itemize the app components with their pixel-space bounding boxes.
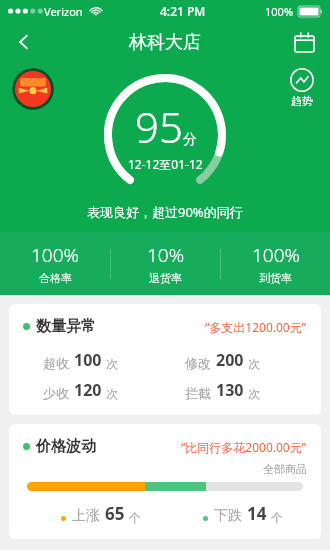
button[interactable]: 价格波动 (9, 424, 321, 539)
staticText: 拦截 (185, 385, 211, 401)
staticText: 200 (216, 349, 244, 371)
staticText: 4:21 PM (160, 3, 206, 19)
button[interactable]: 100% (0, 238, 110, 289)
button[interactable]: Back (4, 22, 44, 62)
staticText: 修改 (185, 355, 211, 371)
staticText: 分 (183, 131, 197, 149)
staticText: 14 (247, 502, 267, 525)
button[interactable]: 100% (221, 238, 330, 289)
staticText: 少收 (43, 385, 69, 401)
staticText: 到货率 (259, 271, 292, 285)
staticText: 表现良好，超过90%的同行 (87, 203, 243, 221)
staticText: 超收 (43, 355, 69, 371)
staticText: “多支出1200.00元” (205, 319, 307, 335)
staticText: 数量异常 (36, 317, 96, 336)
staticText: “比同行多花2000.00元” (181, 439, 307, 455)
staticText: 全部商品 (263, 462, 307, 476)
staticText: 合格率 (39, 271, 72, 285)
staticText: 退货率 (149, 271, 182, 285)
staticText: 次 (106, 386, 118, 401)
staticText: 趋势 (291, 94, 313, 108)
staticText: 下跌 (214, 507, 242, 525)
staticText: 个 (271, 510, 283, 525)
staticText: 100% (265, 4, 294, 19)
staticText: 95 (135, 98, 183, 155)
staticText: 65 (105, 502, 125, 525)
staticText: 100% (252, 242, 300, 268)
staticText: 价格波动 (36, 437, 96, 456)
staticText: 100 (74, 349, 102, 371)
button[interactable]: 10% (111, 238, 220, 289)
button[interactable]: 趋势 (284, 66, 320, 110)
staticText: 次 (248, 386, 260, 401)
staticText: 12-12至01-12 (128, 156, 203, 172)
staticText: 上涨 (72, 507, 100, 525)
staticText: 10% (147, 242, 185, 268)
button[interactable]: Store avatar (12, 68, 54, 110)
button[interactable]: Calendar (286, 24, 322, 60)
staticText: 130 (216, 379, 244, 401)
staticText: 次 (248, 356, 260, 371)
staticText: 个 (129, 510, 141, 525)
staticText: 次 (106, 356, 118, 371)
staticText: Verizon (44, 4, 83, 19)
staticText: 100% (31, 242, 79, 268)
button[interactable]: 数量异常 (9, 304, 321, 415)
staticText: 120 (74, 379, 102, 401)
staticText: 林科大店 (129, 31, 201, 54)
